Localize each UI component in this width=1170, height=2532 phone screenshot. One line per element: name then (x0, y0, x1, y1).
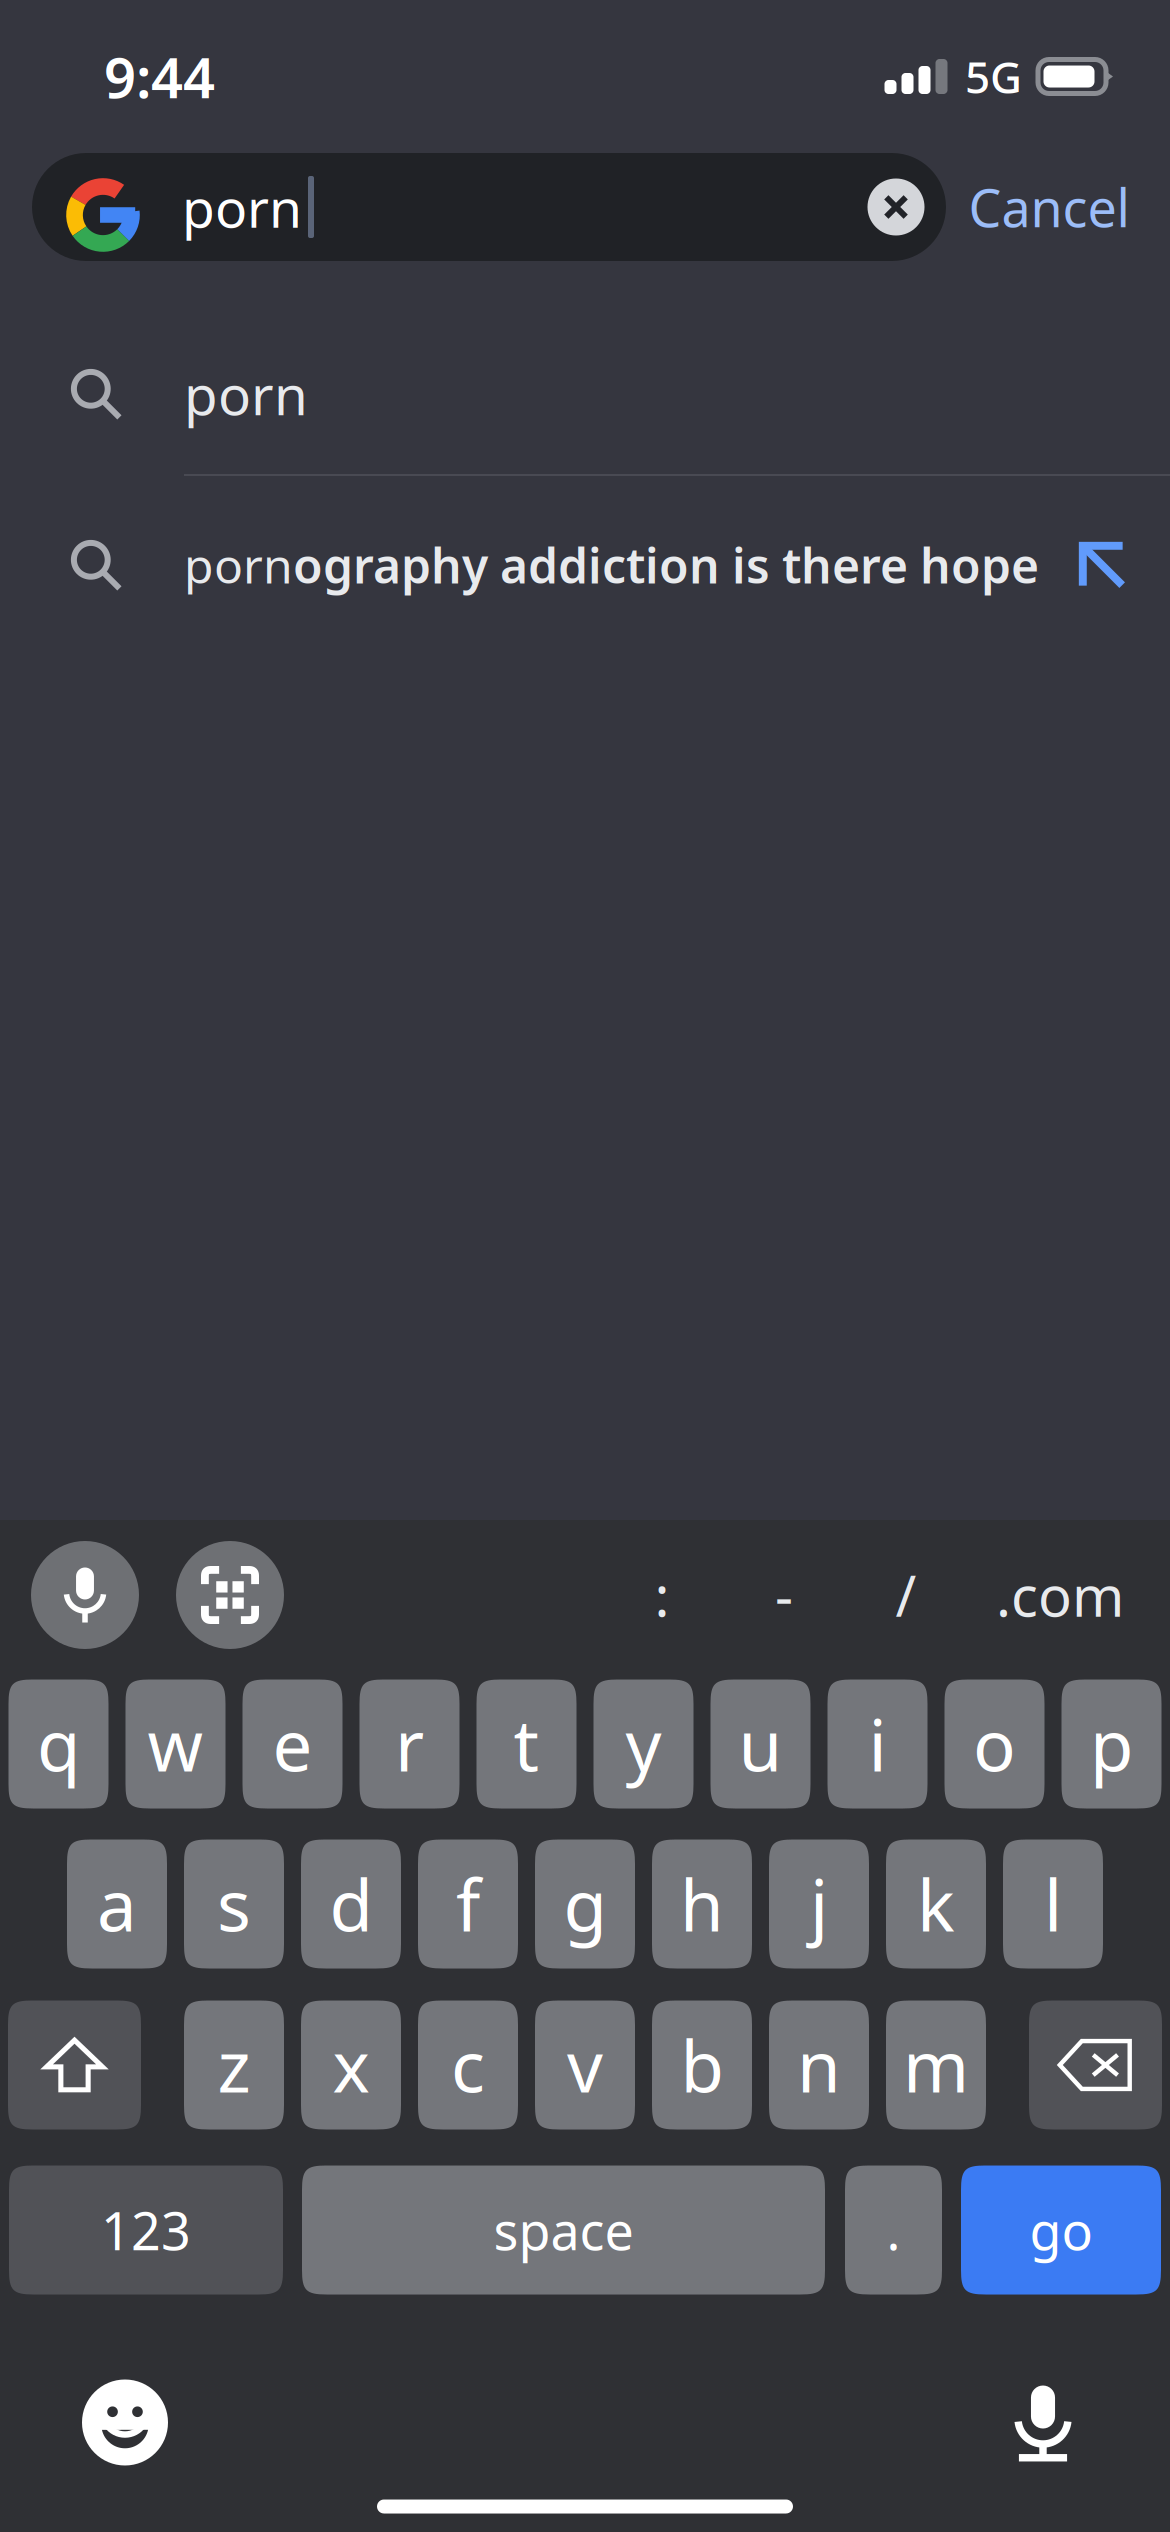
button[interactable]: Shift (8, 2000, 141, 2129)
button[interactable]: . (845, 2165, 942, 2294)
button[interactable]: Voice search (31, 1541, 139, 1649)
staticText: j (810, 1857, 828, 1951)
staticText: b (680, 2018, 723, 2112)
button[interactable]: t (476, 1679, 576, 1808)
button[interactable]: - (742, 1546, 826, 1644)
staticText: . (886, 2195, 900, 2265)
button[interactable]: 123 (9, 2165, 283, 2294)
staticText: pornography addiction is there hope (184, 533, 1039, 597)
button[interactable]: w (125, 1679, 225, 1808)
staticText: porn (182, 172, 302, 242)
button[interactable]: b (652, 2000, 752, 2129)
staticText: f (456, 1857, 480, 1951)
staticText: x (332, 2018, 369, 2112)
button[interactable]: : (620, 1546, 704, 1644)
button[interactable]: y (593, 1679, 693, 1808)
button[interactable]: g (535, 1839, 635, 1968)
button[interactable]: porn (0, 314, 1170, 474)
button[interactable]: v (535, 2000, 635, 2129)
button[interactable]: q (8, 1679, 108, 1808)
staticText: n (797, 2018, 841, 2112)
staticText: 9:44 (104, 39, 215, 114)
button[interactable]: m (886, 2000, 986, 2129)
staticText: u (738, 1697, 782, 1791)
button[interactable]: Clear search (846, 153, 946, 261)
staticText: v (567, 2018, 603, 2112)
staticText: go (1029, 2195, 1092, 2265)
staticText: 5G (965, 47, 1022, 106)
staticText: 123 (101, 2195, 191, 2265)
staticText: p (1090, 1697, 1133, 1791)
button[interactable]: Dictation (988, 2367, 1098, 2477)
staticText: / (895, 1558, 916, 1632)
button[interactable]: j (769, 1839, 869, 1968)
button[interactable]: p (1061, 1679, 1161, 1808)
button[interactable]: u (710, 1679, 810, 1808)
button[interactable]: d (301, 1839, 401, 1968)
button[interactable]: Delete (1029, 2000, 1162, 2129)
button[interactable]: x (301, 2000, 401, 2129)
button[interactable]: / (864, 1546, 948, 1644)
staticText: g (563, 1857, 606, 1951)
button[interactable]: z (184, 2000, 284, 2129)
staticText: : (654, 1558, 669, 1632)
staticText: s (217, 1857, 251, 1951)
button[interactable]: f (418, 1839, 518, 1968)
staticText: c (451, 2018, 485, 2112)
staticText: k (917, 1857, 955, 1951)
button[interactable]: go (961, 2165, 1161, 2294)
staticText: i (868, 1697, 886, 1791)
button[interactable]: Emoji (70, 2367, 180, 2477)
button[interactable]: n (769, 2000, 869, 2129)
staticText: l (1044, 1857, 1062, 1951)
button[interactable]: .com (976, 1546, 1144, 1644)
button[interactable]: space (302, 2165, 825, 2294)
staticText: porn (184, 358, 308, 430)
staticText: a (97, 1857, 137, 1951)
button[interactable]: a (67, 1839, 167, 1968)
button[interactable]: l (1003, 1839, 1103, 1968)
staticText: t (513, 1697, 539, 1791)
staticText: z (217, 2018, 250, 2112)
staticText: q (37, 1697, 80, 1791)
button[interactable]: pornography addiction is there hope (0, 476, 1170, 654)
staticText: .com (996, 1558, 1124, 1632)
button[interactable]: e (242, 1679, 342, 1808)
staticText: space (493, 2195, 633, 2265)
button[interactable]: c (418, 2000, 518, 2129)
staticText: - (775, 1558, 793, 1632)
staticText: w (147, 1697, 203, 1791)
button[interactable]: Cancel (946, 153, 1152, 261)
staticText: h (680, 1857, 724, 1951)
button[interactable]: s (184, 1839, 284, 1968)
button[interactable]: o (944, 1679, 1044, 1808)
button[interactable]: h (652, 1839, 752, 1968)
staticText: m (903, 2018, 969, 2112)
button[interactable]: r (359, 1679, 459, 1808)
staticText: y (625, 1697, 661, 1791)
button[interactable]: Google Lens (176, 1541, 284, 1649)
staticText: d (329, 1857, 372, 1951)
staticText: r (395, 1697, 424, 1791)
button[interactable]: k (886, 1839, 986, 1968)
staticText: Cancel (968, 172, 1129, 242)
staticText: e (272, 1697, 312, 1791)
button[interactable]: i (827, 1679, 927, 1808)
staticText: o (973, 1697, 1016, 1791)
